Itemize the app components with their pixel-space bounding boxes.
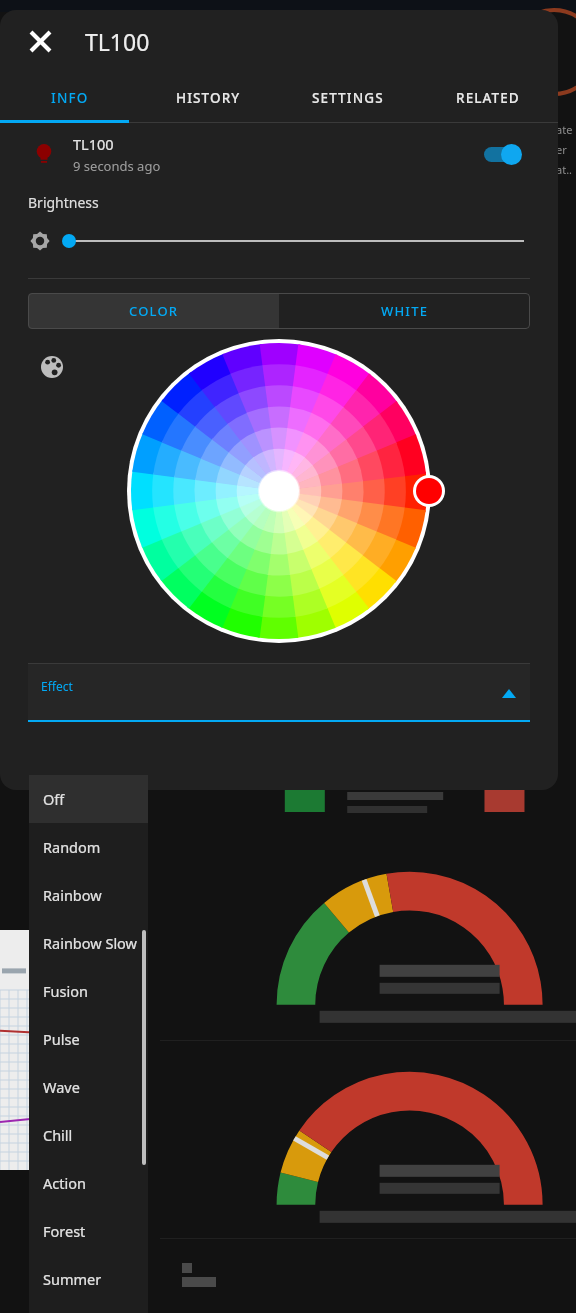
staticText: Pulse [43, 1029, 80, 1049]
button[interactable]: Wave [29, 1063, 148, 1111]
button[interactable]: RELATED [418, 72, 558, 123]
staticText: er [556, 142, 567, 157]
staticText: WHITE [381, 302, 429, 320]
button[interactable]: Action [29, 1159, 148, 1207]
button[interactable]: Random [29, 823, 148, 871]
staticText: Off [43, 789, 65, 809]
button[interactable]: Fusion [29, 967, 148, 1015]
staticText: Rainbow [43, 885, 102, 905]
staticText: Rainbow Slow [43, 933, 138, 953]
staticText: TL100 [85, 26, 150, 57]
staticText: Summer [43, 1269, 102, 1289]
button[interactable] [125, 337, 433, 645]
button[interactable]: Rainbow [29, 871, 148, 919]
staticText: HISTORY [176, 89, 241, 107]
staticText: Brightness [28, 193, 99, 212]
staticText: SETTINGS [312, 89, 384, 107]
button[interactable]: Chill [29, 1111, 148, 1159]
staticText: Random [43, 837, 101, 857]
button[interactable]: SETTINGS [278, 72, 418, 123]
staticText: RELATED [456, 89, 520, 107]
staticText: ate [556, 122, 573, 137]
staticText: TL100 [73, 134, 114, 154]
button[interactable]: COLOR [28, 293, 279, 329]
staticText: Action [43, 1173, 86, 1193]
button[interactable]: TL100 [0, 123, 558, 185]
staticText: at.. [556, 162, 573, 177]
button[interactable]: Power toggle [482, 139, 534, 169]
button[interactable]: Close [20, 21, 60, 61]
staticText: Effect [41, 678, 73, 694]
other: Palette [41, 356, 63, 378]
staticText: INFO [51, 89, 89, 107]
button[interactable]: WHITE [279, 293, 530, 329]
button[interactable]: INFO [0, 72, 139, 123]
staticText: 9 seconds ago [73, 157, 161, 175]
staticText: Chill [43, 1125, 73, 1145]
staticText: Fusion [43, 981, 88, 1001]
button[interactable]: Summer [29, 1255, 148, 1303]
button[interactable] [68, 229, 524, 253]
button[interactable]: Pulse [29, 1015, 148, 1063]
other: Brightness [28, 229, 52, 253]
button[interactable]: HISTORY [139, 72, 278, 123]
staticText: Forest [43, 1221, 86, 1241]
staticText: COLOR [129, 302, 179, 320]
button[interactable]: Effect [28, 664, 530, 722]
button[interactable]: Rainbow Slow [29, 919, 148, 967]
button[interactable]: Off [29, 775, 148, 823]
staticText: Wave [43, 1077, 80, 1097]
button[interactable]: Forest [29, 1207, 148, 1255]
